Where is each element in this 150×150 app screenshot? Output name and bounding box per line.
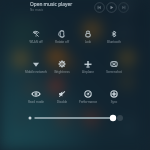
button[interactable]: Airplane [75,60,101,74]
button[interactable]: Disable [49,90,75,104]
staticText: No music [30,8,44,12]
staticText: WLAN off [23,40,49,44]
button[interactable]: WLAN off [23,30,49,44]
staticText: Airplane [75,70,101,74]
button[interactable]: Play [105,1,117,13]
button[interactable]: Next [117,1,129,13]
button[interactable]: Sync [101,90,127,104]
button[interactable]: Brightness slider [0,112,150,124]
staticText: Bluetooth [101,40,127,44]
button[interactable]: Screenshot [101,60,127,74]
staticText: Lock [75,40,101,44]
staticText: Screenshot [101,70,127,74]
button[interactable]: Read mode [23,90,49,104]
staticText: Rotate off [49,40,75,44]
staticText: Mobile network [23,70,49,74]
staticText: Open music player [30,1,73,8]
staticText: Read mode [23,100,49,104]
button[interactable]: Brightness [49,60,75,74]
staticText: Performance [75,100,101,104]
button[interactable]: Open music player [30,1,73,12]
button[interactable]: Mobile network [23,60,49,74]
button[interactable]: Bluetooth [101,30,127,44]
button[interactable]: Performance [75,90,101,104]
button[interactable]: Lock [75,30,101,44]
staticText: Sync [101,100,127,104]
staticText: Brightness [49,70,75,74]
button[interactable]: Previous [93,1,105,13]
staticText: Disable [49,100,75,104]
button[interactable]: Rotate off [49,30,75,44]
